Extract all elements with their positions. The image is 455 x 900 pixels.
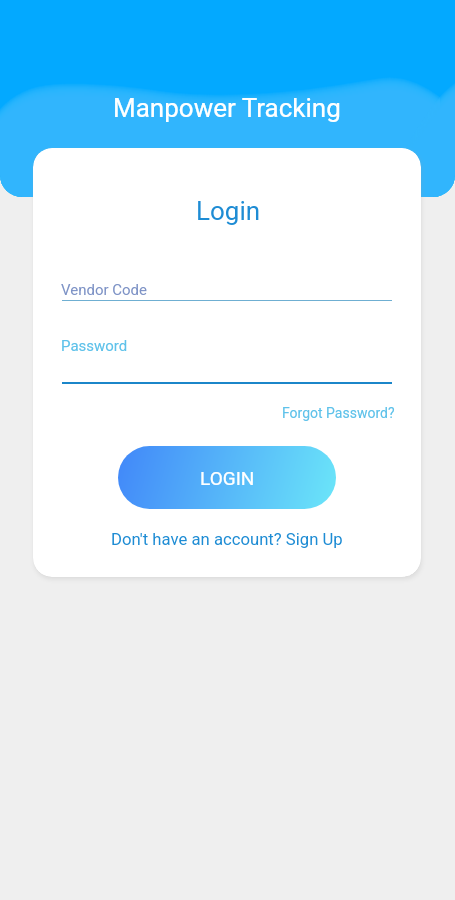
button[interactable]: Don't have an account? Sign Up xyxy=(111,530,343,550)
button[interactable]: Forgot Password? xyxy=(282,405,395,421)
button[interactable]: LOGIN xyxy=(118,446,336,509)
staticText: Vendor Code xyxy=(61,281,148,299)
staticText: Manpower Tracking xyxy=(113,93,341,123)
staticText: Login xyxy=(196,196,261,226)
staticText: Password xyxy=(61,337,128,355)
staticText: LOGIN xyxy=(200,467,255,489)
